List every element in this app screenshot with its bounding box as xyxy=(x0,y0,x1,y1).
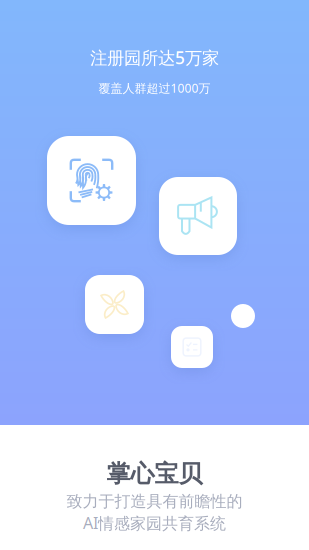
staticText: 注册园所达5万家 xyxy=(90,46,219,69)
staticText: 掌心宝贝 xyxy=(106,459,202,488)
staticText: 覆盖人群超过1000万 xyxy=(98,80,210,96)
staticText: AI情感家园共育系统 xyxy=(83,512,226,533)
staticText: 致力于打造具有前瞻性的 xyxy=(66,491,242,511)
